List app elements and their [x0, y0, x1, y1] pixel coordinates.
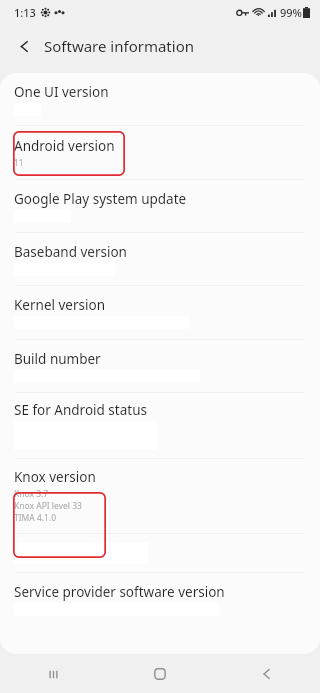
- staticText: SE for Android status: [14, 401, 147, 419]
- staticText: Google Play system update: [14, 190, 187, 208]
- button[interactable]: Back: [8, 30, 40, 62]
- staticText: Build number: [14, 350, 101, 368]
- staticText: Knox version: [14, 468, 96, 486]
- staticText: 1:13: [14, 5, 36, 20]
- button[interactable]: One UI version: [0, 73, 320, 125]
- button[interactable]: Service provider software version: [0, 573, 320, 625]
- staticText: Kernel version: [14, 296, 106, 314]
- staticText: Android version: [14, 137, 115, 155]
- button[interactable]: SE for Android status: [0, 393, 320, 458]
- staticText: TIMA 4.1.0: [14, 512, 57, 524]
- button[interactable]: Kernel version: [0, 286, 320, 339]
- staticText: Baseband version: [14, 243, 127, 261]
- staticText: One UI version: [14, 83, 109, 101]
- button[interactable]: Recents: [0, 655, 106, 693]
- button[interactable]: [0, 534, 320, 572]
- button[interactable]: Build number: [0, 340, 320, 392]
- staticText: Knox API level 33: [14, 500, 82, 512]
- button[interactable]: Knox version: [0, 459, 320, 533]
- staticText: Software information: [44, 36, 194, 56]
- staticText: Service provider software version: [14, 583, 225, 601]
- staticText: 99%: [280, 5, 302, 20]
- staticText: Knox 3.7: [14, 488, 49, 500]
- button[interactable]: Back: [213, 655, 320, 693]
- button[interactable]: Android version: [0, 126, 320, 179]
- button[interactable]: Google Play system update: [0, 180, 320, 232]
- button[interactable]: Home: [106, 655, 213, 693]
- staticText: 11: [14, 157, 24, 169]
- button[interactable]: Baseband version: [0, 233, 320, 285]
